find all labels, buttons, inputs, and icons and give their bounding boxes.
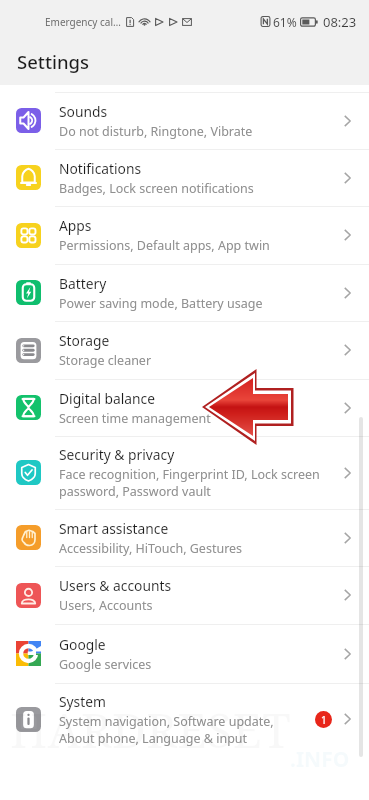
staticText: Badges, Lock screen notifications (59, 180, 254, 197)
staticText: Accessibility, HiTouch, Gestures (59, 540, 243, 557)
staticText: Power saving mode, Battery usage (59, 295, 263, 312)
button[interactable]: Security & privacy (0, 436, 369, 509)
staticText: Users & accounts (59, 576, 172, 595)
staticText: Users, Accounts (59, 597, 153, 614)
staticText: Sounds (59, 102, 108, 121)
button[interactable]: Notifications (0, 149, 369, 206)
button[interactable]: System (0, 683, 369, 755)
staticText: Security & privacy (59, 445, 175, 464)
button[interactable]: Digital balance (0, 379, 369, 436)
staticText: Google (59, 635, 106, 654)
staticText: Digital balance (59, 389, 155, 408)
button[interactable]: Storage (0, 321, 369, 379)
button[interactable]: Smart assistance (0, 509, 369, 566)
staticText: Apps (59, 216, 92, 235)
staticText: Notifications (59, 159, 142, 178)
staticText: Screen time management (59, 410, 211, 427)
staticText: .INFO (290, 745, 350, 774)
staticText: Storage cleaner (59, 352, 152, 369)
staticText: Google services (59, 656, 152, 673)
staticText: HARDRESET (10, 698, 291, 762)
button[interactable]: Battery (0, 264, 369, 321)
staticText: Storage (59, 331, 110, 350)
button[interactable]: Users & accounts (0, 566, 369, 624)
staticText: 1 (321, 713, 327, 727)
staticText: Smart assistance (59, 519, 169, 538)
staticText: System navigation, Software update, Abou… (59, 713, 274, 747)
staticText: Battery (59, 274, 107, 293)
staticText: 61% (273, 14, 297, 30)
staticText: 08:23 (323, 13, 357, 31)
button[interactable]: Apps (0, 206, 369, 264)
button[interactable]: Google (0, 624, 369, 683)
staticText: Emergency cal… (45, 15, 121, 29)
staticText: Settings (17, 49, 90, 74)
button[interactable]: Sounds (0, 92, 369, 149)
staticText: Face recognition, Fingerprint ID, Lock s… (59, 466, 320, 500)
staticText: Do not disturb, Ringtone, Vibrate (59, 123, 253, 140)
staticText: Permissions, Default apps, App twin (59, 237, 270, 254)
staticText: System (59, 692, 106, 711)
